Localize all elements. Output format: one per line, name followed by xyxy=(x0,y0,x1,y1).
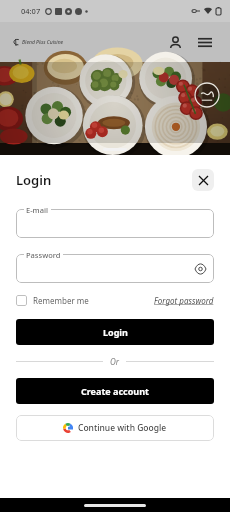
staticText: 04:07 xyxy=(21,6,41,16)
button[interactable]: Close xyxy=(192,169,214,191)
button[interactable]: Menu xyxy=(193,30,217,54)
staticText: Create account xyxy=(81,385,149,397)
staticText: Continue with Google xyxy=(78,422,167,434)
button[interactable]: Continue with Google xyxy=(16,415,214,441)
button[interactable]: Create account xyxy=(16,378,214,404)
staticText: Or xyxy=(110,356,119,367)
button[interactable] xyxy=(16,254,214,283)
staticText: Remember me xyxy=(33,295,89,306)
button[interactable]: Remember me xyxy=(16,293,89,308)
staticText: Password xyxy=(26,250,61,260)
staticText: Forgot password xyxy=(154,295,214,306)
staticText: Login xyxy=(16,171,52,189)
button[interactable]: Login xyxy=(16,319,214,345)
button[interactable]: Show password xyxy=(194,262,207,275)
button[interactable] xyxy=(16,209,214,238)
button[interactable]: Home logo xyxy=(12,38,64,46)
staticText: E-mail xyxy=(26,205,49,215)
staticText: Login xyxy=(103,326,128,338)
button[interactable]: Account xyxy=(163,30,187,54)
button[interactable]: Forgot password xyxy=(154,293,214,308)
button[interactable]: Halal certified xyxy=(194,82,220,108)
staticText: Blend Plus Cuisine xyxy=(22,39,64,46)
